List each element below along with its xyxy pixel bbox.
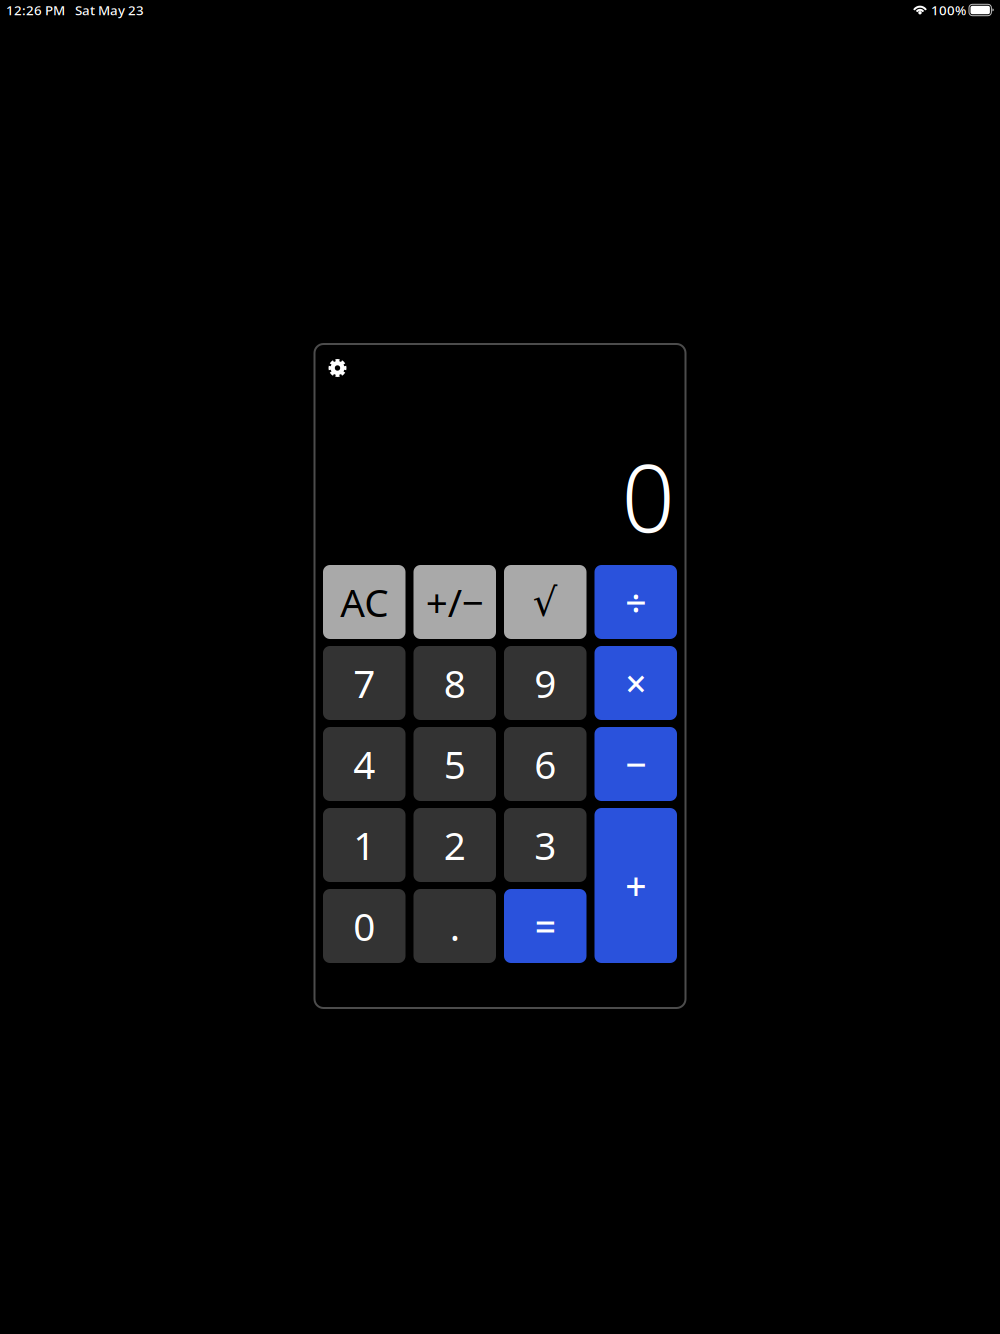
staticText: 2	[444, 819, 466, 871]
staticText: 4	[353, 738, 375, 790]
staticText: +	[625, 861, 646, 910]
button[interactable]: 5	[413, 727, 496, 801]
staticText: 0	[353, 900, 375, 952]
button[interactable]: √	[504, 565, 586, 639]
button[interactable]: 0	[323, 889, 405, 963]
staticText: 1	[353, 819, 375, 871]
button[interactable]: .	[413, 889, 496, 963]
staticText: AC	[340, 576, 388, 628]
staticText: Sat May 23	[75, 1, 144, 19]
button[interactable]: 1	[323, 808, 405, 882]
button[interactable]: 6	[504, 727, 586, 801]
staticText: 6	[534, 738, 556, 790]
staticText: ÷	[625, 577, 646, 627]
staticText: .	[450, 900, 460, 952]
button[interactable]: 3	[504, 808, 586, 882]
staticText: 0	[621, 434, 674, 558]
button[interactable]: AC	[323, 565, 405, 639]
staticText: 100%	[931, 1, 966, 19]
staticText: 9	[534, 657, 556, 709]
button[interactable]: ×	[594, 646, 677, 720]
button[interactable]: −	[594, 727, 677, 801]
staticText: +/−	[426, 576, 484, 628]
button[interactable]: 4	[323, 727, 405, 801]
staticText: 3	[534, 819, 556, 871]
button[interactable]: +	[594, 808, 677, 963]
button[interactable]: Settings	[326, 357, 348, 379]
button[interactable]: +/−	[413, 565, 496, 639]
button[interactable]: 8	[413, 646, 496, 720]
button[interactable]: =	[504, 889, 586, 963]
button[interactable]: 7	[323, 646, 405, 720]
staticText: √	[533, 580, 558, 624]
staticText: −	[625, 739, 646, 789]
staticText: 8	[444, 657, 466, 709]
button[interactable]: ÷	[594, 565, 677, 639]
staticText: 7	[353, 657, 375, 709]
button[interactable]: 2	[413, 808, 496, 882]
staticText: =	[535, 901, 556, 951]
staticText: 5	[444, 738, 466, 790]
button[interactable]: 9	[504, 646, 586, 720]
staticText: 12:26 PM	[6, 1, 65, 19]
staticText: ×	[625, 658, 646, 708]
